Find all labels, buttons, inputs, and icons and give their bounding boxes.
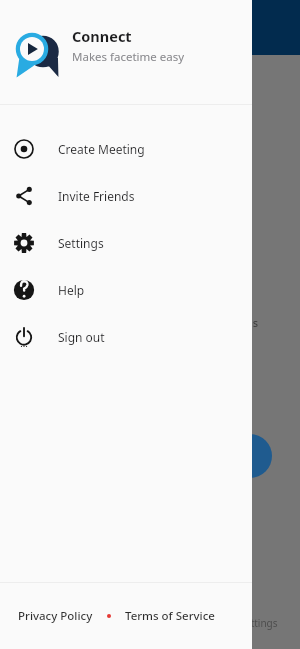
button[interactable]: Create Meeting xyxy=(0,125,252,172)
staticText: Help xyxy=(58,282,85,298)
staticText: Terms of Service xyxy=(125,608,215,624)
button[interactable]: Connect xyxy=(0,0,252,104)
staticText: Sign out xyxy=(58,329,105,345)
button[interactable]: Invite Friends xyxy=(0,172,252,219)
staticText: Makes facetime easy xyxy=(72,49,185,65)
button[interactable]: New call xyxy=(228,434,272,478)
staticText: Connect xyxy=(72,26,132,46)
staticText: ettings xyxy=(245,616,278,630)
button[interactable]: Terms of Service xyxy=(125,602,215,630)
staticText: Invite Friends xyxy=(58,188,135,204)
staticText: Privacy Policy xyxy=(18,608,93,624)
button[interactable]: Help xyxy=(0,266,252,313)
button[interactable]: Privacy Policy xyxy=(18,602,93,630)
staticText: ds xyxy=(246,315,259,330)
button[interactable]: Settings xyxy=(0,219,252,266)
button[interactable]: Sign out xyxy=(0,313,252,360)
staticText: Settings xyxy=(58,235,104,251)
staticText: Create Meeting xyxy=(58,141,145,157)
